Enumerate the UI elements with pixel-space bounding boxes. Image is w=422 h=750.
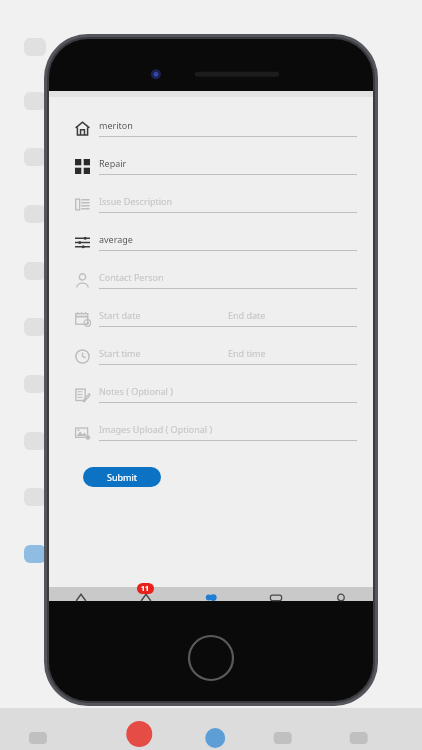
button[interactable]: average: [65, 223, 357, 261]
button[interactable]: Repair: [65, 147, 357, 185]
button[interactable]: Submit: [83, 467, 161, 487]
button[interactable]: Images Upload ( Optional ): [65, 413, 357, 451]
staticText: 11: [141, 584, 150, 594]
staticText: Repair: [99, 157, 127, 169]
button[interactable]: Home: [49, 592, 113, 601]
button[interactable]: meriton: [65, 109, 357, 147]
staticText: End time: [228, 347, 266, 359]
staticText: End date: [228, 309, 266, 321]
staticText: meriton: [99, 119, 133, 131]
button[interactable]: Notes ( Optional ): [65, 375, 357, 413]
button[interactable]: Start time: [65, 337, 357, 375]
staticText: Notes ( Optional ): [99, 385, 173, 397]
staticText: Submit: [107, 471, 138, 483]
button[interactable]: Home button: [186, 633, 236, 683]
staticText: Start date: [99, 309, 141, 321]
button[interactable]: Cards: [243, 592, 308, 601]
button[interactable]: Issue Description: [65, 185, 357, 223]
staticText: Issue Description: [99, 195, 173, 207]
staticText: Contact Person: [99, 271, 164, 283]
button[interactable]: Contact Person: [65, 261, 357, 299]
button[interactable]: Start date: [65, 299, 357, 337]
staticText: average: [99, 233, 133, 245]
button[interactable]: People: [178, 592, 243, 601]
button[interactable]: Alerts: [113, 587, 178, 601]
button[interactable]: Profile: [308, 592, 373, 601]
staticText: Images Upload ( Optional ): [99, 423, 213, 435]
staticText: Start time: [99, 347, 141, 359]
